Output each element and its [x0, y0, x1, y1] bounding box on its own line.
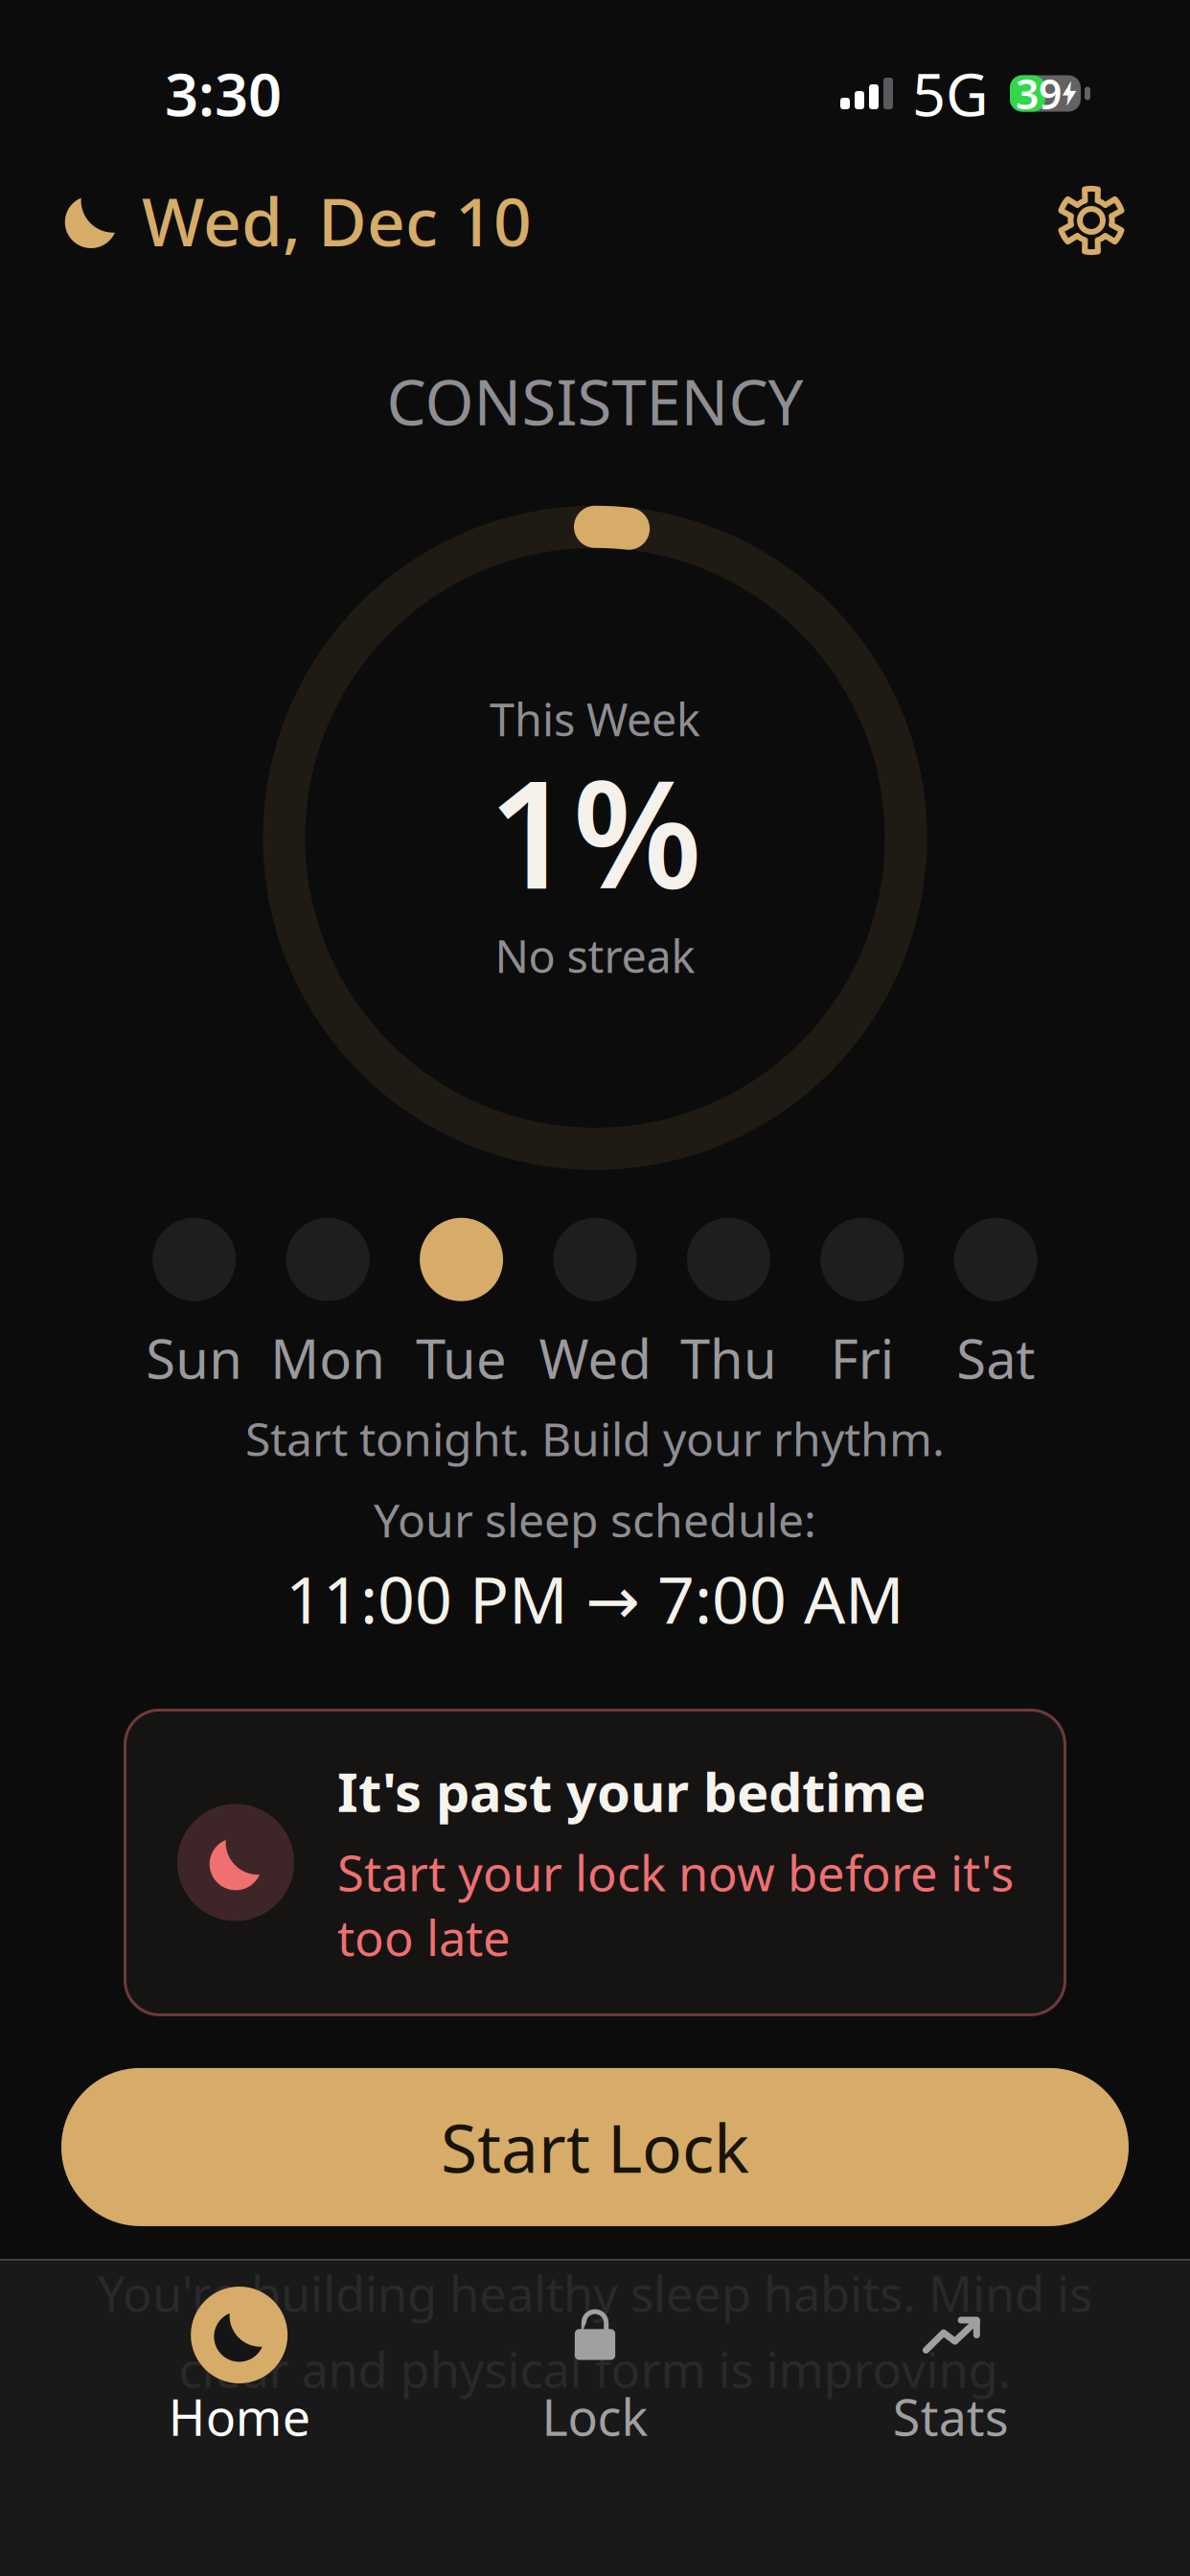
staticText: Sat [957, 1322, 1035, 1394]
staticText: You're building healthy sleep habits. Mi… [98, 2261, 1092, 2325]
button[interactable]: Stats [773, 2287, 1129, 2450]
staticText: Tue [416, 1322, 507, 1394]
staticText: Thu [680, 1322, 777, 1394]
staticText: Start your lock now before it's too late [337, 1840, 1014, 1969]
staticText: 11:00 PM → 7:00 AM [286, 1555, 904, 1642]
staticText: Wed, Dec 10 [142, 176, 532, 265]
button[interactable]: Lock [417, 2287, 773, 2450]
staticText: It's past your bedtime [337, 1756, 926, 1827]
button[interactable]: Start Lock [61, 2068, 1129, 2226]
staticText: 1% [488, 733, 702, 930]
staticText: Start Lock [441, 2103, 749, 2191]
staticText: CONSISTENCY [387, 359, 803, 443]
staticText: Lock [542, 2383, 648, 2450]
staticText: Mon [270, 1322, 385, 1394]
staticText: Fri [831, 1322, 894, 1394]
staticText: Your sleep schedule: [374, 1489, 816, 1550]
staticText: clear and physical form is improving. [179, 2337, 1011, 2401]
button[interactable]: Home [61, 2287, 417, 2450]
staticText: Sun [146, 1322, 243, 1394]
staticText: 5G [912, 54, 989, 132]
staticText: 3:30 [165, 54, 282, 132]
staticText: 39 [1016, 66, 1062, 121]
staticText: Home [168, 2383, 310, 2450]
staticText: No streak [495, 926, 695, 985]
staticText: Stats [893, 2383, 1009, 2450]
button[interactable]: Settings [1056, 185, 1127, 256]
staticText: Wed [539, 1322, 651, 1394]
staticText: Start tonight. Build your rhythm. [245, 1408, 945, 1469]
staticText: This Week [490, 689, 700, 749]
